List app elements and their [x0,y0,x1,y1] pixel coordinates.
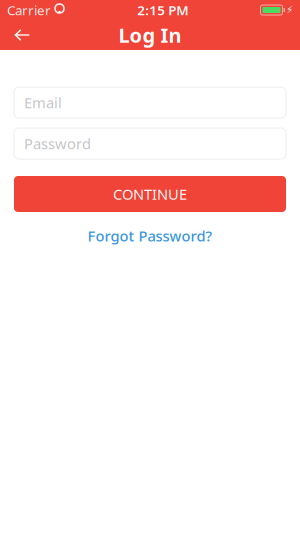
staticText: 2:15 PM [137,1,188,19]
button[interactable]: Forgot Password? [75,223,224,248]
staticText: Log In [118,22,181,48]
staticText: Email [24,93,62,112]
staticText: Carrier [7,1,51,19]
staticText: CONTINUE [113,184,187,204]
staticText: Forgot Password? [87,226,212,245]
staticText: ⚡︎ [286,4,293,16]
staticText: Password [24,134,91,153]
button[interactable]: CONTINUE [14,176,286,212]
button[interactable]: Back [0,20,44,50]
